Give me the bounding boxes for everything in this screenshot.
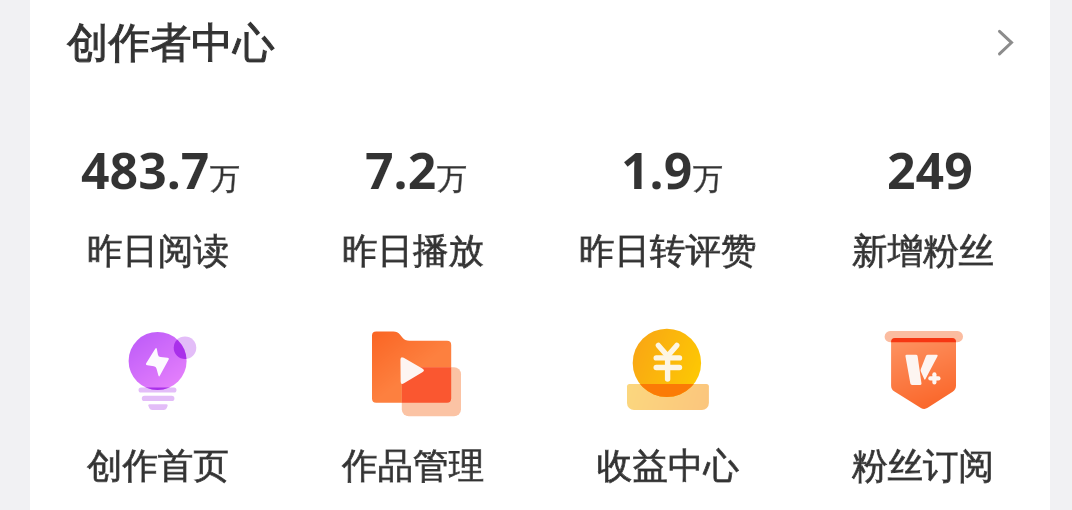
staticText: 万 bbox=[693, 160, 723, 198]
staticText: 昨日播放 bbox=[342, 229, 484, 274]
button[interactable]: 1.9 bbox=[540, 136, 795, 286]
staticText: 新增粉丝 bbox=[852, 229, 994, 274]
staticText: 昨日阅读 bbox=[87, 229, 229, 274]
staticText: 作品管理 bbox=[342, 444, 484, 489]
staticText: 万 bbox=[210, 160, 240, 198]
button[interactable]: 收益中心 bbox=[540, 324, 795, 494]
button[interactable]: 创作首页 bbox=[30, 324, 285, 494]
staticText: 收益中心 bbox=[597, 444, 739, 489]
staticText: 昨日阅读 bbox=[87, 229, 229, 274]
staticText: 创作者中心 bbox=[67, 17, 275, 69]
staticText: 创作首页 bbox=[87, 444, 229, 489]
staticText: 收益中心 bbox=[597, 444, 739, 489]
staticText: 1.9 bbox=[621, 136, 693, 204]
staticText: 昨日转评赞 bbox=[579, 229, 757, 274]
staticText: 万 bbox=[210, 160, 240, 198]
staticText: 创作首页 bbox=[87, 444, 229, 489]
button[interactable]: 483.7 bbox=[30, 136, 285, 286]
staticText: 万 bbox=[437, 160, 467, 198]
staticText: 新增粉丝 bbox=[852, 229, 994, 274]
button[interactable]: 创作者中心 bbox=[30, 0, 1050, 92]
staticText: 昨日转评赞 bbox=[579, 229, 757, 274]
staticText: 粉丝订阅 bbox=[852, 444, 994, 489]
staticText: 昨日播放 bbox=[342, 229, 484, 274]
staticText: 创作者中心 bbox=[67, 17, 275, 69]
staticText: 7.2 bbox=[365, 136, 437, 204]
button[interactable]: 粉丝订阅 bbox=[795, 324, 1050, 494]
other: 进入创作者中心 bbox=[975, 15, 1031, 71]
button[interactable]: 249 bbox=[795, 136, 1050, 286]
staticText: 作品管理 bbox=[342, 444, 484, 489]
button[interactable]: 7.2 bbox=[285, 136, 540, 286]
staticText: 249 bbox=[887, 136, 973, 204]
staticText: 粉丝订阅 bbox=[852, 444, 994, 489]
staticText: 483.7 bbox=[81, 136, 210, 204]
staticText: 万 bbox=[437, 160, 467, 198]
staticText: 万 bbox=[693, 160, 723, 198]
button[interactable]: 作品管理 bbox=[285, 324, 540, 494]
